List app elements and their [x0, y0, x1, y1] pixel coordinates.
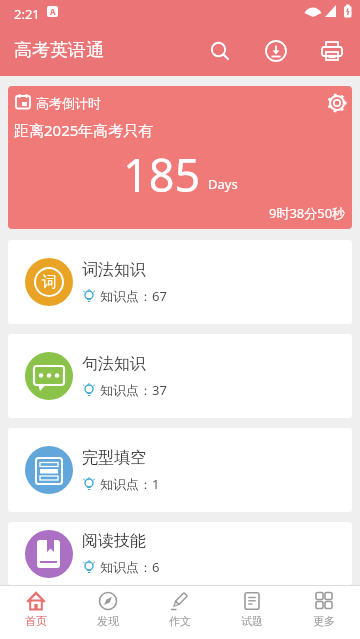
staticText: 发现 [97, 614, 119, 628]
button[interactable] [316, 28, 360, 72]
button[interactable]: 更多 [288, 586, 360, 639]
staticText: 完型填空 [82, 448, 146, 468]
staticText: A [50, 6, 56, 17]
staticText: 知识点：67 [100, 287, 167, 305]
button[interactable] [272, 28, 316, 72]
button[interactable]: 句法知识 [8, 334, 352, 418]
staticText: 知识点：6 [100, 558, 160, 576]
button[interactable] [228, 28, 272, 72]
staticText: 知识点：37 [100, 381, 167, 399]
staticText: 高考英语通 [14, 39, 104, 62]
staticText: 更多 [313, 614, 335, 628]
staticText: 185 [123, 144, 201, 205]
button[interactable]: 试题 [216, 586, 288, 639]
staticText: 高考倒计时 [36, 95, 101, 111]
button[interactable]: 词 [8, 240, 352, 324]
staticText: 作文 [169, 614, 191, 628]
staticText: 知识点：1 [100, 475, 160, 493]
button[interactable]: 作文 [144, 586, 216, 639]
button[interactable]: 高考倒计时 [8, 86, 352, 229]
staticText: Days [208, 175, 238, 193]
staticText: 词 [42, 273, 57, 292]
staticText: 9时38分50秒 [269, 204, 346, 222]
staticText: 首页 [25, 614, 47, 628]
staticText: 句法知识 [82, 354, 146, 374]
button[interactable]: 发现 [72, 586, 144, 639]
button[interactable]: 完型填空 [8, 428, 352, 512]
staticText: 阅读技能 [82, 531, 146, 551]
button[interactable]: 阅读技能 [8, 522, 352, 585]
staticText: 距离2025年高考只有 [14, 120, 154, 140]
staticText: 2:21 [14, 5, 40, 23]
staticText: 试题 [241, 614, 263, 628]
button[interactable] [208, 61, 234, 87]
staticText: 词法知识 [82, 260, 146, 280]
button[interactable]: 首页 [0, 586, 72, 639]
